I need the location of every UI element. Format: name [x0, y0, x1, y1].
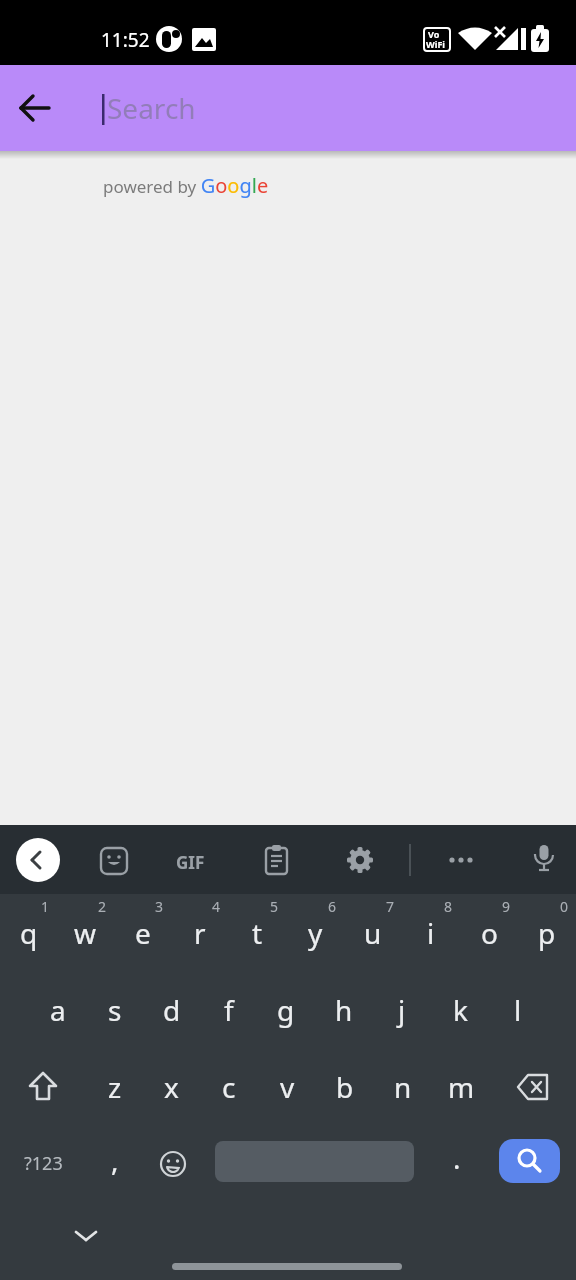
staticText: z: [108, 1068, 122, 1106]
button[interactable]: n: [374, 1048, 432, 1125]
staticText: t: [252, 914, 263, 952]
button[interactable]: o: [460, 894, 518, 971]
staticText: w: [74, 914, 97, 952]
button[interactable]: [447, 846, 475, 874]
staticText: ,: [111, 1141, 119, 1179]
staticText: powered by Google: [103, 172, 269, 199]
staticText: Search: [107, 89, 196, 127]
button[interactable]: z: [86, 1048, 143, 1125]
staticText: s: [108, 991, 122, 1029]
staticText: q: [20, 914, 38, 952]
button[interactable]: r: [171, 894, 228, 971]
button[interactable]: [144, 1125, 202, 1202]
staticText: Vo: [428, 28, 440, 40]
button[interactable]: [0, 80, 56, 136]
staticText: y: [308, 914, 323, 952]
staticText: 9: [502, 897, 511, 916]
button[interactable]: j: [373, 971, 431, 1048]
staticText: r: [194, 914, 206, 952]
button[interactable]: ?123: [0, 1125, 86, 1202]
staticText: k: [453, 991, 468, 1029]
staticText: l: [514, 991, 522, 1029]
staticText: n: [394, 1068, 412, 1106]
button[interactable]: [490, 1048, 576, 1125]
button[interactable]: ,: [86, 1125, 144, 1202]
button[interactable]: [346, 846, 374, 874]
staticText: m: [448, 1068, 475, 1106]
button[interactable]: .: [428, 1125, 486, 1202]
staticText: i: [427, 914, 435, 952]
staticText: p: [538, 914, 556, 952]
staticText: 4: [212, 897, 221, 916]
staticText: o: [481, 914, 498, 952]
staticText: 0: [560, 897, 569, 916]
staticText: 2: [98, 897, 107, 916]
button[interactable]: [531, 844, 557, 876]
button[interactable]: GIF: [176, 851, 205, 874]
staticText: g: [277, 991, 295, 1029]
button[interactable]: y: [286, 894, 344, 971]
button[interactable]: t: [228, 894, 286, 971]
staticText: b: [336, 1068, 354, 1106]
button[interactable]: k: [431, 971, 489, 1048]
button[interactable]: [99, 846, 129, 876]
staticText: 6: [328, 897, 337, 916]
button[interactable]: e: [114, 894, 171, 971]
button[interactable]: h: [315, 971, 373, 1048]
button[interactable]: w: [57, 894, 114, 971]
button[interactable]: a: [29, 971, 86, 1048]
button[interactable]: f: [200, 971, 257, 1048]
staticText: e: [135, 914, 151, 952]
staticText: x: [164, 1068, 179, 1106]
staticText: u: [364, 914, 382, 952]
button[interactable]: q: [0, 894, 57, 971]
staticText: 1: [41, 897, 50, 916]
button[interactable]: i: [402, 894, 460, 971]
staticText: a: [50, 991, 66, 1029]
staticText: 8: [444, 897, 453, 916]
button[interactable]: [0, 1048, 86, 1125]
button[interactable]: l: [489, 971, 547, 1048]
staticText: h: [335, 991, 353, 1029]
button[interactable]: x: [143, 1048, 200, 1125]
button[interactable]: m: [432, 1048, 490, 1125]
button[interactable]: d: [143, 971, 200, 1048]
staticText: j: [398, 991, 406, 1029]
staticText: d: [163, 991, 181, 1029]
staticText: 3: [155, 897, 164, 916]
staticText: WiFi: [426, 38, 446, 50]
button[interactable]: p: [518, 894, 576, 971]
staticText: 5: [270, 897, 279, 916]
button[interactable]: [16, 838, 60, 882]
button[interactable]: [72, 1227, 100, 1247]
button[interactable]: [263, 845, 291, 873]
button[interactable]: s: [86, 971, 143, 1048]
staticText: 11:52: [101, 27, 150, 53]
staticText: 7: [386, 897, 395, 916]
staticText: .: [453, 1139, 461, 1177]
button[interactable]: g: [257, 971, 315, 1048]
button[interactable]: c: [200, 1048, 258, 1125]
staticText: f: [224, 991, 234, 1029]
staticText: v: [280, 1068, 295, 1106]
button[interactable]: u: [344, 894, 402, 971]
button[interactable]: [499, 1139, 560, 1183]
staticText: c: [222, 1068, 236, 1106]
staticText: ?123: [24, 1151, 63, 1176]
button[interactable]: Search: [102, 65, 576, 151]
button[interactable]: v: [258, 1048, 316, 1125]
button[interactable]: b: [316, 1048, 374, 1125]
